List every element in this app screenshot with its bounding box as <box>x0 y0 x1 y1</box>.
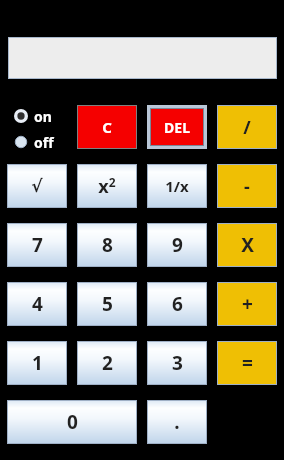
staticText: X <box>241 232 254 258</box>
staticText: - <box>244 174 250 199</box>
staticText: 1/x <box>165 176 189 196</box>
button[interactable]: 9 <box>147 223 207 267</box>
staticText: on <box>34 107 52 126</box>
button[interactable]: 2 <box>77 341 137 385</box>
button[interactable]: 3 <box>147 341 207 385</box>
staticText: 1 <box>32 350 43 376</box>
button[interactable]: DEL <box>150 108 204 146</box>
staticText: off <box>34 133 54 152</box>
staticText: 4 <box>32 291 43 317</box>
button[interactable] <box>8 37 277 79</box>
button[interactable]: / <box>217 105 277 149</box>
button[interactable]: on <box>14 105 52 127</box>
button[interactable]: 4 <box>7 282 67 326</box>
button[interactable]: 8 <box>77 223 137 267</box>
button[interactable]: - <box>217 164 277 208</box>
button[interactable]: = <box>217 341 277 385</box>
button[interactable]: 1 <box>7 341 67 385</box>
button[interactable]: √ <box>7 164 67 208</box>
staticText: √ <box>31 176 43 196</box>
staticText: + <box>242 291 253 317</box>
button[interactable]: . <box>147 400 207 444</box>
staticText: 9 <box>172 232 183 258</box>
button[interactable]: X <box>217 223 277 267</box>
staticText: 6 <box>172 291 183 317</box>
button[interactable]: x2 <box>77 164 137 208</box>
staticText: 0 <box>67 409 78 435</box>
button[interactable]: + <box>217 282 277 326</box>
staticText: . <box>174 409 180 435</box>
button[interactable]: 5 <box>77 282 137 326</box>
button[interactable]: 1/x <box>147 164 207 208</box>
staticText: 8 <box>102 232 113 258</box>
staticText: = <box>242 350 253 376</box>
staticText: 7 <box>32 232 43 258</box>
button[interactable]: 6 <box>147 282 207 326</box>
button[interactable]: 7 <box>7 223 67 267</box>
button[interactable]: C <box>77 105 137 149</box>
button[interactable]: off <box>14 131 54 153</box>
staticText: 5 <box>102 291 113 317</box>
staticText: 3 <box>172 350 183 376</box>
button[interactable]: 0 <box>7 400 137 444</box>
staticText: x2 <box>98 174 116 199</box>
staticText: C <box>102 117 112 137</box>
staticText: 2 <box>102 350 113 376</box>
staticText: DEL <box>164 118 190 137</box>
staticText: / <box>243 115 251 140</box>
